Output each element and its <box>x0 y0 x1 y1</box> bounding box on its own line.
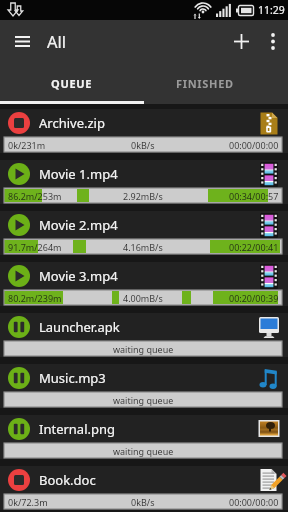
button[interactable] <box>8 27 36 55</box>
staticText: 0kB/s <box>131 139 155 151</box>
staticText: 00:22/00:41 <box>229 241 279 253</box>
button[interactable]: Movie 3.mp4 <box>0 262 288 306</box>
button[interactable]: Movie 1.mp4 <box>0 160 288 204</box>
button[interactable] <box>258 20 288 62</box>
staticText: Movie 2.mp4 <box>39 216 118 234</box>
staticText: Internal.png <box>39 420 116 438</box>
staticText: FINISHED <box>176 76 234 91</box>
staticText: 2.92mB/s <box>123 190 163 202</box>
button[interactable]: Internal.png <box>0 415 288 459</box>
button[interactable]: Book.doc <box>0 466 288 510</box>
button[interactable]: FINISHED <box>144 62 288 104</box>
staticText: 4.00mB/s <box>123 292 163 304</box>
staticText: 0k/231m <box>8 139 46 151</box>
staticText: waiting queue <box>113 445 174 457</box>
staticText: 91.7m/264m <box>8 241 62 253</box>
staticText: 00:20/00:39 <box>229 292 279 304</box>
staticText: 86.2m/253m <box>8 190 62 202</box>
staticText: Archive.zip <box>39 114 105 132</box>
button[interactable]: QUEUE <box>0 62 144 104</box>
staticText: waiting queue <box>113 394 174 406</box>
staticText: All <box>47 30 67 52</box>
staticText: Music.mp3 <box>39 369 106 387</box>
staticText: Movie 1.mp4 <box>39 165 118 183</box>
button[interactable]: Launcher.apk <box>0 313 288 357</box>
staticText: 00:00/00:00 <box>229 496 279 508</box>
button[interactable]: Archive.zip <box>0 109 288 153</box>
button[interactable]: Movie 2.mp4 <box>0 211 288 255</box>
staticText: QUEUE <box>51 76 93 91</box>
staticText: 11:29 <box>258 3 285 17</box>
staticText: 0k/72.3m <box>8 496 48 508</box>
staticText: Movie 3.mp4 <box>39 267 118 285</box>
staticText: 4.16mB/s <box>123 241 163 253</box>
staticText: Launcher.apk <box>39 318 120 336</box>
staticText: 80.2m/239m <box>8 292 62 304</box>
staticText: 00:34/00:57 <box>229 190 279 202</box>
staticText: 0kB/s <box>131 496 155 508</box>
staticText: 00:00/00:00 <box>229 139 279 151</box>
staticText: Book.doc <box>39 471 96 489</box>
button[interactable]: Music.mp3 <box>0 364 288 408</box>
button[interactable] <box>224 20 258 62</box>
staticText: waiting queue <box>113 343 174 355</box>
